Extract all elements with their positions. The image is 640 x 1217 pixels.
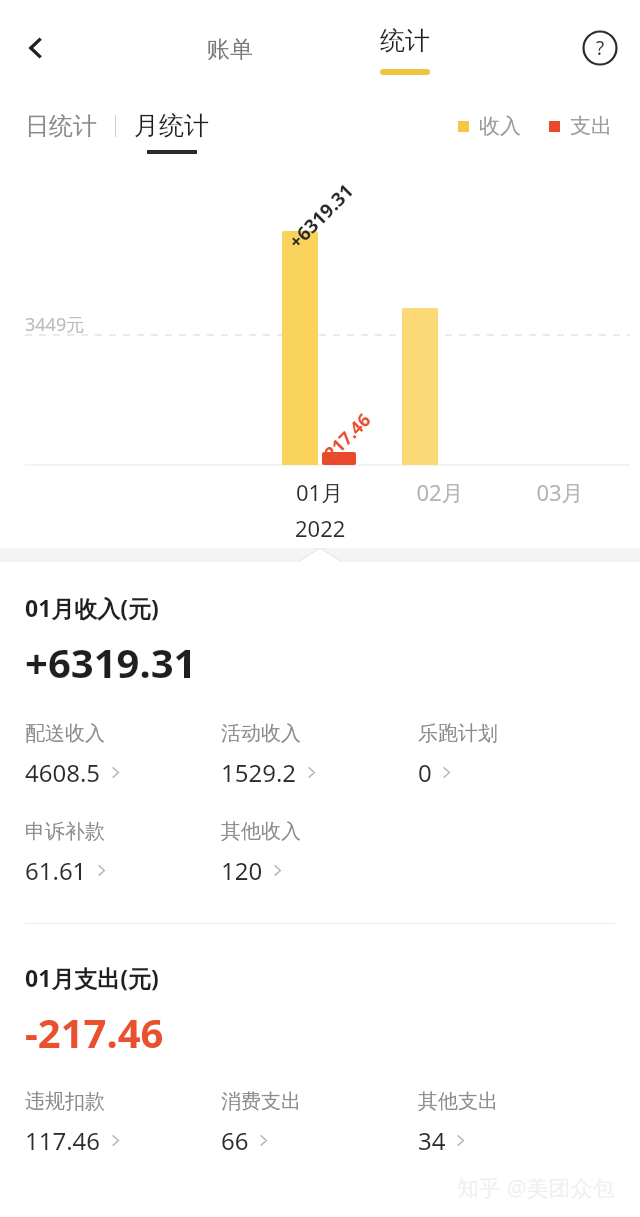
staticText: 收入 xyxy=(479,113,521,139)
staticText: 01月 xyxy=(296,477,344,507)
staticText: 01月收入(元) xyxy=(25,592,159,623)
staticText: 66 xyxy=(221,1124,249,1157)
button[interactable]: 其他收入 xyxy=(221,819,418,887)
button[interactable]: 其他支出 xyxy=(418,1089,615,1157)
button[interactable]: 消费支出 xyxy=(221,1089,418,1157)
button[interactable]: 日统计 xyxy=(25,107,97,145)
button[interactable]: 02月 xyxy=(390,477,490,507)
staticText: 02月 xyxy=(390,477,490,507)
staticText: 03月 xyxy=(510,477,610,507)
staticText: 61.61 xyxy=(25,854,87,887)
button[interactable]: 申诉补款 xyxy=(25,819,221,887)
staticText: 活动收入 xyxy=(221,721,301,746)
staticText: 知乎 @美团众包 xyxy=(457,1172,615,1202)
button[interactable]: 乐跑计划 xyxy=(418,721,615,789)
button[interactable]: 账单 xyxy=(180,19,280,79)
staticText: 违规扣款 xyxy=(25,1089,105,1114)
button[interactable] xyxy=(282,231,318,465)
staticText: 乐跑计划 xyxy=(418,721,498,746)
staticText: 01月支出(元) xyxy=(25,962,159,993)
staticText: 2022 xyxy=(295,513,346,543)
button[interactable]: 活动收入 xyxy=(221,721,418,789)
staticText: 120 xyxy=(221,854,263,887)
staticText: -217.46 xyxy=(314,407,377,470)
staticText: 申诉补款 xyxy=(25,819,105,844)
button[interactable]: 月统计 xyxy=(134,110,209,143)
button[interactable]: Back xyxy=(10,22,62,74)
button[interactable]: 配送收入 xyxy=(25,721,221,789)
staticText: 4608.5 xyxy=(25,756,101,789)
staticText: 34 xyxy=(418,1124,446,1157)
staticText: 其他支出 xyxy=(418,1089,498,1114)
staticText: +6319.31 xyxy=(283,178,359,254)
staticText: 支出 xyxy=(570,113,612,139)
staticText: 统计 xyxy=(380,25,430,56)
staticText: 3449元 xyxy=(25,312,85,337)
staticText: 配送收入 xyxy=(25,721,105,746)
staticText: -217.46 xyxy=(25,1005,164,1059)
staticText: 0 xyxy=(418,756,432,789)
staticText: 账单 xyxy=(207,35,253,64)
staticText: +6319.31 xyxy=(25,635,197,689)
staticText: 月统计 xyxy=(134,110,209,141)
staticText: 其他收入 xyxy=(221,819,301,844)
button[interactable]: 统计 xyxy=(355,9,455,87)
button[interactable]: 违规扣款 xyxy=(25,1089,221,1157)
button[interactable] xyxy=(322,452,356,465)
staticText: 消费支出 xyxy=(221,1089,301,1114)
button[interactable]: 01月 xyxy=(270,477,370,543)
staticText: ? xyxy=(596,35,605,61)
staticText: 日统计 xyxy=(25,111,97,141)
staticText: 1529.2 xyxy=(221,756,297,789)
button[interactable]: 03月 xyxy=(510,477,610,507)
button[interactable]: Help xyxy=(574,22,626,74)
staticText: 117.46 xyxy=(25,1124,101,1157)
